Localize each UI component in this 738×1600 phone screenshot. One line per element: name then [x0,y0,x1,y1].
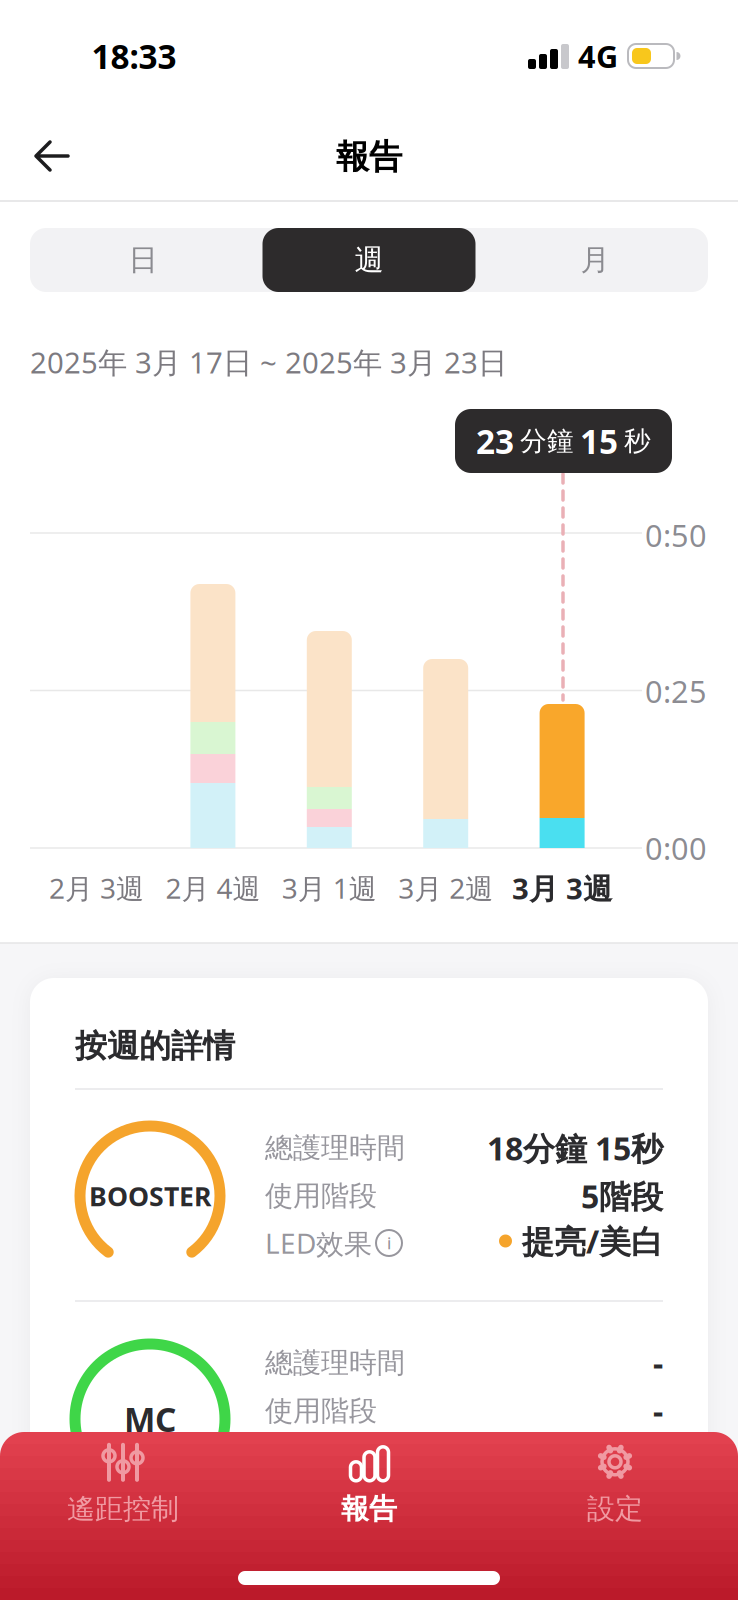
button[interactable]: 週 [262,228,475,292]
button[interactable]: 日 [36,228,249,292]
staticText: 日 [128,242,157,278]
staticText: 18:33 [91,34,176,78]
staticText: 2025年 3月 17日 ~ 2025年 3月 23日 [30,342,507,381]
staticText: 18分鐘 15秒 [487,1127,663,1169]
staticText: 5階段 [581,1175,663,1217]
staticText: 分鐘 [520,425,574,457]
staticText: 設定 [587,1492,643,1526]
button[interactable]: 遙距控制 [33,1434,213,1534]
staticText: 提亮/美白 [522,1220,663,1262]
staticText: 遙距控制 [67,1492,179,1526]
staticText: 0:00 [645,828,707,868]
staticText: 15 [580,419,618,463]
staticText: 按週的詳情 [75,1026,235,1066]
staticText: 23 [476,419,514,463]
staticText: 總護理時間 [265,1346,405,1380]
staticText: BOOSTER [89,1178,211,1214]
staticText: - [653,1342,663,1384]
button[interactable]: 設定 [525,1434,705,1534]
button[interactable]: 月 [488,228,701,292]
staticText: LED效果 [265,1224,372,1262]
staticText: 3月 2週 [398,869,493,907]
staticText: 週 [354,242,383,278]
staticText: 報告 [336,136,402,177]
button[interactable]: i [374,1228,404,1258]
staticText: 月 [580,242,609,278]
staticText: 0:25 [645,671,707,711]
staticText: 3月 1週 [282,869,377,907]
staticText: 使用階段 [265,1394,377,1428]
staticText: MC [124,1397,176,1441]
staticText: 2月 4週 [165,869,260,907]
staticText: 2月 3週 [49,869,144,907]
staticText: i [387,1232,391,1254]
button[interactable]: 報告 [279,1434,459,1534]
button[interactable] [22,126,82,186]
staticText: 報告 [341,1492,397,1526]
staticText: 總護理時間 [265,1131,405,1165]
staticText: 秒 [624,425,651,457]
staticText: - [653,1390,663,1432]
staticText: 3月 3週 [512,868,612,907]
staticText: 使用階段 [265,1179,377,1213]
staticText: 4G [578,36,618,76]
staticText: 0:50 [645,515,707,555]
